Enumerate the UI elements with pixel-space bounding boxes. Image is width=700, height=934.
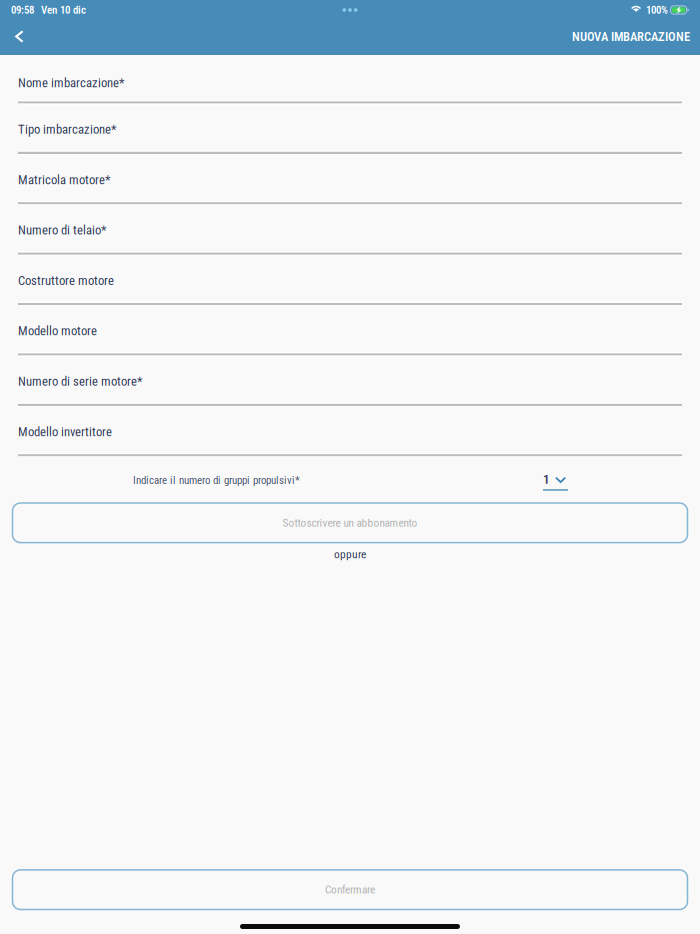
- staticText: Confermare: [325, 883, 375, 896]
- button[interactable]: Confermare: [12, 870, 687, 909]
- staticText: 1: [543, 472, 550, 487]
- staticText: Numero di serie motore*: [18, 374, 142, 389]
- staticText: NUOVA IMBARCAZIONE: [572, 29, 690, 44]
- staticText: 09:58: [11, 4, 34, 16]
- staticText: Matricola motore*: [18, 172, 110, 187]
- staticText: Numero di telaio*: [18, 223, 106, 238]
- button[interactable]: Modello invertitore: [0, 407, 700, 457]
- staticText: Modello motore: [18, 324, 97, 338]
- staticText: Indicare il numero di gruppi propulsivi*: [133, 474, 300, 487]
- staticText: Costruttore motore: [18, 273, 114, 288]
- button[interactable]: Modello motore: [0, 306, 700, 357]
- button[interactable]: Tipo imbarcazione*: [0, 105, 700, 155]
- button[interactable]: Numero di gruppi propulsivi: [543, 457, 573, 503]
- staticText: oppure: [334, 548, 366, 561]
- staticText: Ven 10 dic: [41, 4, 86, 16]
- button[interactable]: Nome imbarcazione*: [0, 55, 700, 105]
- staticText: Sottoscrivere un abbonamento: [282, 516, 417, 529]
- staticText: 100%: [646, 4, 668, 16]
- button[interactable]: Back: [0, 20, 38, 55]
- staticText: Tipo imbarcazione*: [18, 122, 116, 137]
- button[interactable]: Numero di telaio*: [0, 205, 700, 256]
- button[interactable]: Numero di serie motore*: [0, 357, 700, 407]
- button[interactable]: Costruttore motore: [0, 256, 700, 306]
- staticText: Modello invertitore: [18, 424, 112, 439]
- button[interactable]: Matricola motore*: [0, 155, 700, 205]
- button[interactable]: Sottoscrivere un abbonamento: [12, 503, 687, 543]
- staticText: Nome imbarcazione*: [18, 76, 124, 90]
